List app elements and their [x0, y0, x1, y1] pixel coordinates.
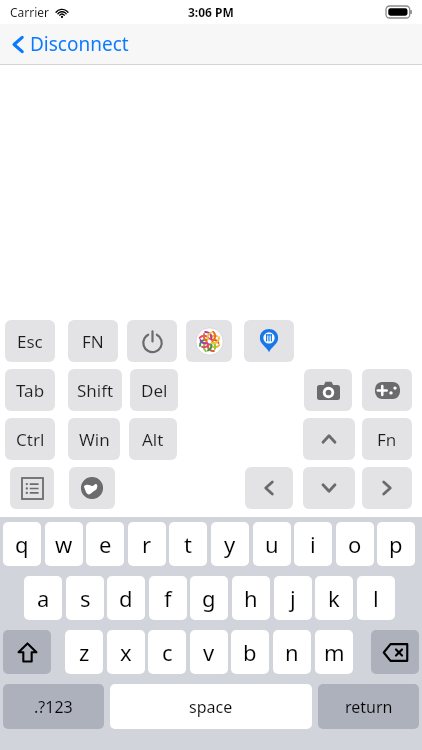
button[interactable]: Alt — [129, 418, 177, 460]
staticText: l — [373, 583, 379, 613]
button[interactable]: p — [377, 522, 415, 566]
staticText: e — [99, 529, 112, 559]
staticText: Alt — [142, 428, 164, 451]
staticText: f — [164, 583, 172, 613]
staticText: p — [389, 529, 403, 559]
button[interactable]: s — [66, 576, 104, 620]
button[interactable]: Arrow left — [245, 467, 293, 509]
button[interactable]: Tab — [5, 369, 55, 411]
button[interactable]: a — [24, 576, 62, 620]
staticText: k — [328, 583, 340, 613]
button[interactable]: Game controller — [362, 369, 412, 411]
staticText: c — [162, 637, 173, 667]
button[interactable]: c — [148, 630, 186, 674]
button[interactable]: Places — [244, 320, 294, 362]
button[interactable]: Arrow right — [362, 467, 412, 509]
button[interactable]: Backspace — [371, 630, 419, 674]
button[interactable]: i — [294, 522, 332, 566]
button[interactable]: Apps — [186, 320, 232, 362]
staticText: u — [265, 529, 279, 559]
staticText: Shift — [77, 379, 114, 402]
button[interactable]: return — [318, 684, 419, 729]
button[interactable]: l — [357, 576, 395, 620]
button[interactable]: b — [231, 630, 269, 674]
staticText: t — [184, 529, 192, 559]
button[interactable]: h — [232, 576, 270, 620]
button[interactable]: Del — [130, 369, 178, 411]
button[interactable]: q — [3, 522, 41, 566]
button[interactable]: FN — [68, 320, 118, 362]
staticText: FN — [82, 330, 104, 353]
staticText: j — [290, 583, 296, 613]
staticText: s — [80, 583, 91, 613]
staticText: r — [142, 529, 152, 559]
staticText: o — [348, 529, 362, 559]
staticText: Esc — [17, 330, 43, 353]
button[interactable]: t — [169, 522, 207, 566]
button[interactable]: f — [149, 576, 187, 620]
staticText: y — [224, 529, 236, 559]
staticText: g — [202, 583, 216, 613]
button[interactable]: w — [45, 522, 83, 566]
button[interactable]: Disconnect — [8, 27, 133, 61]
button[interactable]: k — [315, 576, 353, 620]
button[interactable]: x — [107, 630, 145, 674]
staticText: n — [285, 637, 299, 667]
button[interactable]: o — [336, 522, 374, 566]
button[interactable]: y — [211, 522, 249, 566]
staticText: m — [324, 637, 345, 667]
staticText: x — [120, 637, 132, 667]
staticText: return — [345, 696, 393, 718]
button[interactable]: g — [190, 576, 228, 620]
button[interactable]: m — [315, 630, 353, 674]
staticText: b — [243, 637, 257, 667]
button[interactable]: Power — [127, 320, 177, 362]
staticText: v — [203, 637, 215, 667]
staticText: i — [310, 529, 316, 559]
staticText: Tab — [16, 379, 45, 402]
button[interactable]: Arrow down — [303, 467, 355, 509]
button[interactable]: space — [110, 684, 312, 729]
staticText: Fn — [377, 428, 397, 451]
button[interactable]: n — [273, 630, 311, 674]
staticText: h — [244, 583, 258, 613]
button[interactable]: Language — [69, 467, 115, 509]
button[interactable]: e — [86, 522, 124, 566]
staticText: Disconnect — [30, 31, 129, 57]
staticText: z — [79, 637, 90, 667]
staticText: space — [189, 696, 233, 718]
button[interactable]: Menu — [10, 467, 54, 509]
staticText: 3:06 PM — [188, 4, 234, 20]
button[interactable]: j — [274, 576, 312, 620]
button[interactable]: z — [65, 630, 103, 674]
button[interactable]: Arrow up — [303, 418, 355, 460]
button[interactable]: Esc — [5, 320, 55, 362]
button[interactable]: Fn — [362, 418, 412, 460]
staticText: .?123 — [34, 696, 73, 718]
button[interactable]: v — [190, 630, 228, 674]
button[interactable]: u — [253, 522, 291, 566]
button[interactable]: Shift — [68, 369, 122, 411]
button[interactable]: Ctrl — [5, 418, 55, 460]
button[interactable]: Win — [68, 418, 120, 460]
staticText: w — [55, 529, 73, 559]
staticText: q — [15, 529, 29, 559]
button[interactable]: Shift — [3, 630, 51, 674]
staticText: Ctrl — [16, 428, 45, 451]
staticText: Win — [79, 428, 110, 451]
button[interactable]: r — [128, 522, 166, 566]
button[interactable]: .?123 — [3, 684, 104, 729]
staticText: a — [37, 583, 50, 613]
button[interactable]: d — [107, 576, 145, 620]
staticText: Carrier — [10, 4, 50, 20]
staticText: Del — [141, 379, 168, 402]
button[interactable]: Camera — [304, 369, 352, 411]
staticText: d — [119, 583, 133, 613]
